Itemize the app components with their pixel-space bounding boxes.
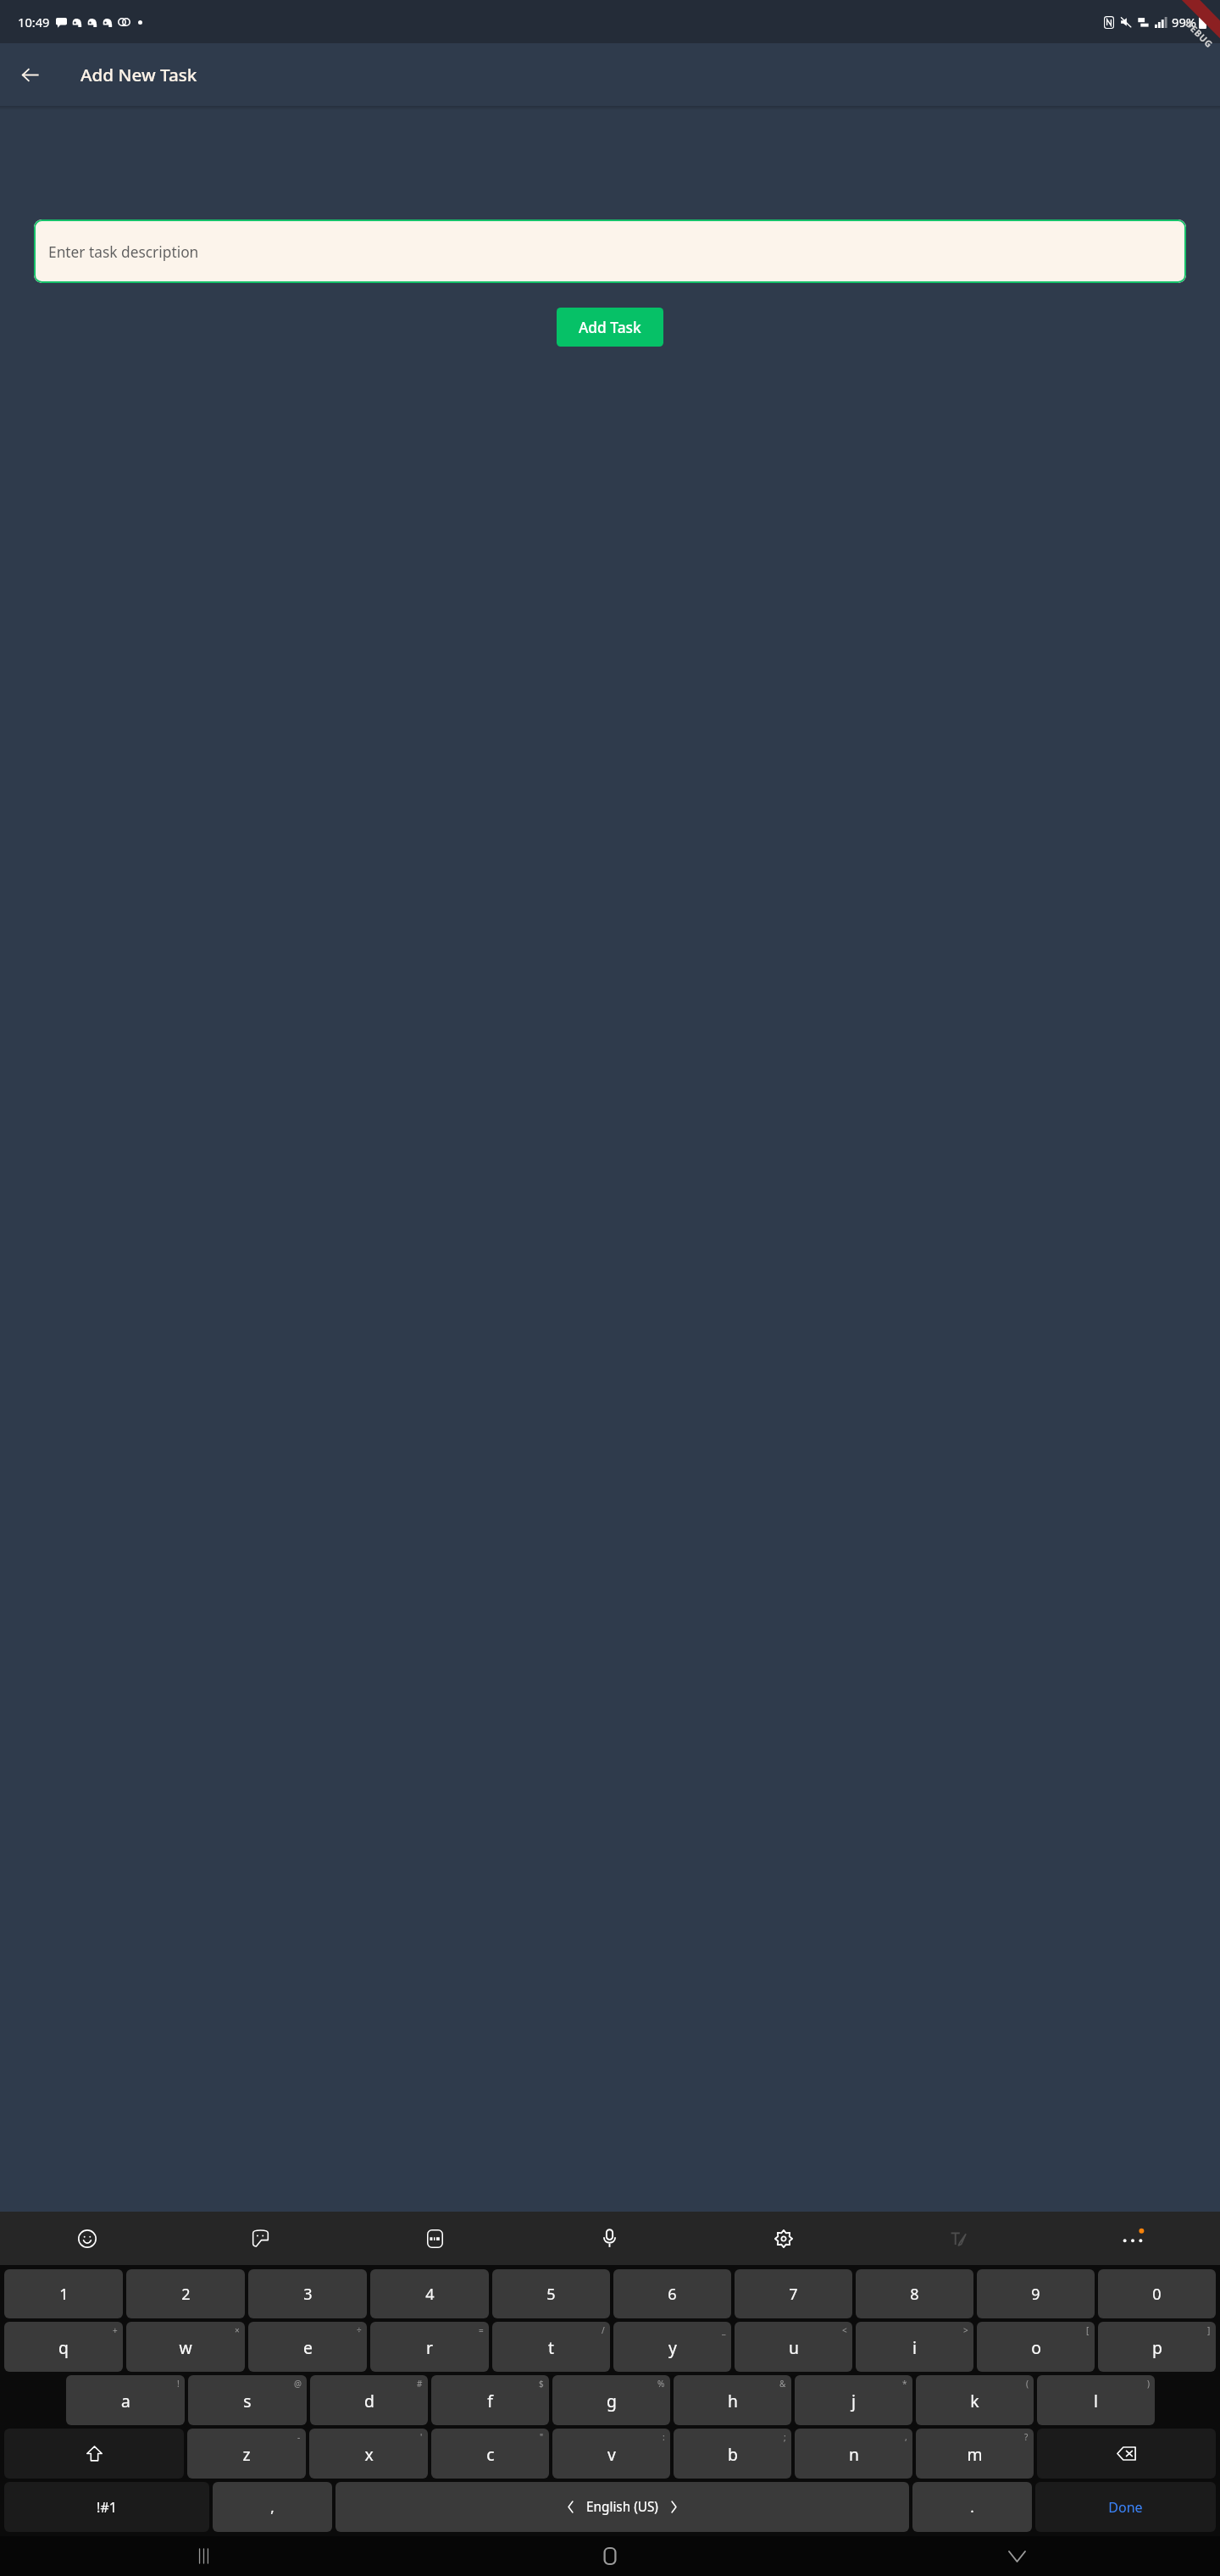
button[interactable]: .	[912, 2482, 1032, 2532]
staticText: =	[479, 2324, 484, 2336]
staticText: _	[722, 2324, 726, 2336]
staticText: z	[242, 2443, 251, 2465]
staticText: '	[420, 2431, 423, 2443]
staticText: ?	[1024, 2431, 1029, 2443]
staticText: m	[967, 2443, 983, 2465]
staticText: *	[902, 2378, 907, 2390]
staticText: s	[243, 2390, 252, 2412]
staticText: Enter task description	[48, 241, 199, 262]
button[interactable]: English (US)	[335, 2482, 909, 2532]
staticText: !	[177, 2378, 180, 2390]
staticText: #	[417, 2378, 423, 2390]
button[interactable]: 6	[613, 2269, 731, 2318]
button[interactable]: ,	[213, 2482, 332, 2532]
button[interactable]: p	[1098, 2322, 1216, 2372]
button[interactable]: c	[431, 2429, 549, 2479]
button[interactable]: j	[795, 2375, 912, 2425]
button[interactable]: 0	[1098, 2269, 1216, 2318]
staticText: ÷	[357, 2324, 362, 2336]
button[interactable]: o	[977, 2322, 1095, 2372]
button[interactable]: z	[187, 2429, 306, 2479]
button[interactable]: g	[552, 2375, 670, 2425]
button[interactable]: b	[674, 2429, 791, 2479]
staticText: 8	[910, 2284, 919, 2305]
button[interactable]: t	[492, 2322, 610, 2372]
button[interactable]: 1	[4, 2269, 123, 2318]
staticText: ;	[784, 2431, 786, 2443]
button[interactable]: 8	[856, 2269, 973, 2318]
button[interactable]: Hide keyboard	[813, 2536, 1220, 2576]
staticText: d	[364, 2390, 374, 2412]
staticText: 0	[1152, 2284, 1162, 2305]
button[interactable]: Backspace	[1037, 2429, 1216, 2479]
staticText: >	[963, 2324, 968, 2336]
staticText: !#1	[97, 2498, 117, 2517]
button[interactable]: Home	[407, 2536, 813, 2576]
staticText: (	[1026, 2378, 1029, 2390]
staticText: n	[849, 2443, 859, 2465]
button[interactable]: 7	[735, 2269, 852, 2318]
button[interactable]: !#1	[4, 2482, 209, 2532]
button[interactable]: l	[1037, 2375, 1155, 2425]
button[interactable]: 5	[492, 2269, 610, 2318]
button[interactable]: Settings	[696, 2212, 871, 2265]
staticText: Done	[1108, 2498, 1143, 2517]
button[interactable]: d	[310, 2375, 428, 2425]
button[interactable]: i	[856, 2322, 973, 2372]
button[interactable]: More	[1045, 2212, 1220, 2265]
button[interactable]: h	[674, 2375, 791, 2425]
button[interactable]: Done	[1035, 2482, 1216, 2532]
button[interactable]: u	[735, 2322, 852, 2372]
staticText: g	[607, 2390, 617, 2412]
staticText: ]	[1207, 2324, 1211, 2336]
button[interactable]: 2	[126, 2269, 245, 2318]
staticText: DEBUG	[1182, 18, 1215, 51]
button[interactable]: w	[126, 2322, 245, 2372]
staticText: [	[1086, 2324, 1090, 2336]
staticText: k	[970, 2390, 979, 2412]
staticText: 9	[1031, 2284, 1040, 2305]
staticText: h	[728, 2390, 738, 2412]
button[interactable]: e	[248, 2322, 367, 2372]
staticText: r	[426, 2336, 433, 2358]
staticText: ×	[235, 2324, 240, 2336]
staticText: j	[851, 2390, 856, 2412]
button[interactable]: 9	[977, 2269, 1095, 2318]
staticText: "	[540, 2431, 544, 2443]
button[interactable]: a	[66, 2375, 185, 2425]
button[interactable]: r	[370, 2322, 489, 2372]
button[interactable]: n	[795, 2429, 912, 2479]
button[interactable]: m	[916, 2429, 1034, 2479]
button[interactable]: Shift	[4, 2429, 184, 2479]
button[interactable]: y	[613, 2322, 731, 2372]
button[interactable]: v	[552, 2429, 670, 2479]
staticText: f	[487, 2390, 493, 2412]
button[interactable]: Back	[14, 59, 46, 91]
staticText: 7	[789, 2284, 798, 2305]
button[interactable]: 4	[370, 2269, 489, 2318]
button[interactable]: GIF	[347, 2212, 522, 2265]
button[interactable]: Enter task description	[34, 219, 1186, 283]
button[interactable]: s	[188, 2375, 307, 2425]
button[interactable]: x	[309, 2429, 428, 2479]
button[interactable]: q	[4, 2322, 123, 2372]
button[interactable]: 3	[248, 2269, 367, 2318]
staticText: +	[113, 2324, 118, 2336]
staticText: l	[1094, 2390, 1098, 2412]
button[interactable]: Emoji	[0, 2212, 174, 2265]
button[interactable]: Recents	[0, 2536, 407, 2576]
staticText: Add New Task	[80, 63, 197, 86]
button[interactable]: Stickers	[174, 2212, 347, 2265]
staticText: /	[602, 2324, 605, 2336]
staticText: &	[779, 2378, 786, 2390]
staticText: -	[297, 2431, 301, 2443]
button[interactable]: Add Task	[557, 308, 663, 347]
staticText: 99%	[1172, 14, 1196, 31]
staticText: e	[303, 2336, 313, 2358]
staticText: u	[789, 2336, 799, 2358]
staticText: o	[1031, 2336, 1041, 2358]
button[interactable]: Voice input	[522, 2212, 696, 2265]
button[interactable]: f	[431, 2375, 549, 2425]
button[interactable]: k	[916, 2375, 1034, 2425]
